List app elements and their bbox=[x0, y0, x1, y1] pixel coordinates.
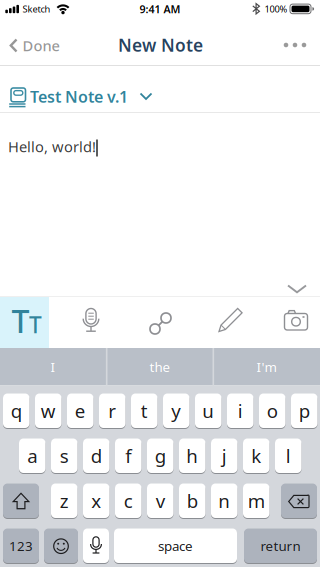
staticText: y bbox=[171, 398, 181, 423]
staticText: w bbox=[41, 398, 56, 423]
staticText: I bbox=[50, 358, 55, 376]
staticText: 9:41 AM bbox=[139, 2, 180, 16]
button[interactable]: h bbox=[179, 438, 205, 474]
button[interactable]: the bbox=[107, 348, 212, 385]
staticText: x bbox=[91, 488, 101, 513]
button[interactable]: j bbox=[211, 438, 237, 474]
staticText: b bbox=[187, 488, 198, 513]
button[interactable]: space bbox=[114, 528, 237, 564]
staticText: g bbox=[155, 443, 166, 468]
button[interactable]: o bbox=[259, 393, 285, 429]
button[interactable] bbox=[138, 297, 182, 348]
staticText: T bbox=[11, 299, 29, 342]
button[interactable]: x bbox=[83, 483, 109, 519]
staticText: e bbox=[75, 398, 86, 423]
staticText: the bbox=[149, 358, 170, 376]
staticText: 100% bbox=[264, 3, 287, 15]
button[interactable] bbox=[281, 483, 317, 519]
button[interactable]: k bbox=[243, 438, 269, 474]
staticText: h bbox=[186, 443, 198, 468]
button[interactable]: v bbox=[147, 483, 173, 519]
button[interactable]: Test Note v.1 bbox=[0, 66, 320, 112]
button[interactable]: p bbox=[291, 393, 317, 429]
button[interactable] bbox=[205, 297, 249, 348]
button[interactable]: s bbox=[51, 438, 77, 474]
staticText: z bbox=[60, 488, 69, 513]
staticText: m bbox=[248, 488, 265, 513]
button[interactable] bbox=[274, 297, 318, 348]
button[interactable] bbox=[44, 528, 78, 564]
button[interactable]: a bbox=[19, 438, 45, 474]
button[interactable]: d bbox=[83, 438, 109, 474]
button[interactable]: i bbox=[227, 393, 253, 429]
button[interactable] bbox=[273, 20, 317, 65]
button[interactable]: e bbox=[67, 393, 93, 429]
button[interactable]: I bbox=[0, 348, 105, 385]
button[interactable] bbox=[3, 483, 39, 519]
staticText: l bbox=[286, 443, 291, 468]
button[interactable]: return bbox=[244, 528, 317, 564]
button[interactable]: c bbox=[115, 483, 141, 519]
staticText: New Note bbox=[118, 33, 203, 56]
staticText: T bbox=[29, 309, 42, 339]
staticText: Test Note v.1 bbox=[30, 86, 128, 107]
staticText: return bbox=[260, 537, 300, 555]
staticText: a bbox=[27, 443, 37, 468]
button[interactable]: T bbox=[0, 297, 49, 348]
staticText: space bbox=[158, 537, 193, 555]
staticText: f bbox=[125, 443, 131, 468]
staticText: Hello, world! bbox=[8, 137, 96, 156]
staticText: s bbox=[60, 443, 69, 468]
button[interactable]: b bbox=[179, 483, 205, 519]
staticText: v bbox=[156, 488, 165, 513]
button[interactable]: l bbox=[275, 438, 301, 474]
button[interactable]: u bbox=[195, 393, 221, 429]
staticText: t bbox=[141, 398, 148, 423]
staticText: c bbox=[124, 488, 133, 513]
button[interactable]: f bbox=[115, 438, 141, 474]
button[interactable]: g bbox=[147, 438, 173, 474]
staticText: Sketch bbox=[22, 3, 50, 15]
button[interactable] bbox=[69, 297, 113, 348]
staticText: I'm bbox=[256, 358, 276, 376]
staticText: d bbox=[91, 443, 102, 468]
button[interactable]: y bbox=[163, 393, 189, 429]
button[interactable]: 123 bbox=[3, 528, 39, 564]
button[interactable]: I'm bbox=[214, 348, 319, 385]
button[interactable]: Done bbox=[0, 20, 64, 65]
button[interactable]: t bbox=[131, 393, 157, 429]
button[interactable]: m bbox=[243, 483, 269, 519]
button[interactable]: r bbox=[99, 393, 125, 429]
button[interactable]: n bbox=[211, 483, 237, 519]
staticText: i bbox=[238, 398, 243, 423]
button[interactable] bbox=[279, 276, 315, 300]
button[interactable]: q bbox=[3, 393, 29, 429]
button[interactable]: w bbox=[35, 393, 61, 429]
staticText: o bbox=[267, 398, 278, 423]
button[interactable]: z bbox=[51, 483, 77, 519]
staticText: u bbox=[202, 398, 214, 423]
button[interactable] bbox=[83, 528, 109, 564]
staticText: p bbox=[299, 398, 310, 423]
staticText: 123 bbox=[9, 537, 33, 555]
staticText: r bbox=[108, 398, 116, 423]
staticText: Done bbox=[22, 36, 59, 55]
staticText: n bbox=[218, 488, 230, 513]
staticText: k bbox=[251, 443, 261, 468]
staticText: j bbox=[222, 443, 227, 468]
staticText: q bbox=[11, 398, 22, 423]
